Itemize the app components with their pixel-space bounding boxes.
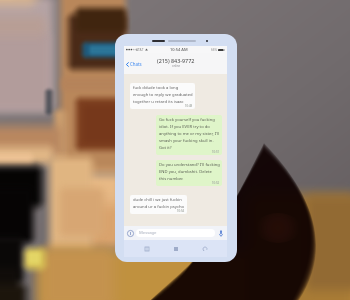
button[interactable]: fuck ddude took a long enough to reply w… <box>130 83 195 109</box>
button[interactable]: Back <box>198 242 211 255</box>
button[interactable]: Message <box>136 229 215 237</box>
button[interactable]: Recent apps <box>140 242 153 255</box>
staticText: 10:51 <box>212 150 220 154</box>
staticText: 10:54 <box>177 209 185 213</box>
button[interactable]: Home <box>169 242 182 255</box>
button[interactable]: Go fuck yourself you fucking idiot. If y… <box>156 115 222 155</box>
staticText: 66% <box>211 48 217 52</box>
staticText: 10:54 AM <box>170 47 188 52</box>
button[interactable]: Add attachment <box>126 229 135 238</box>
staticText: fuck ddude took a long enough to reply w… <box>133 85 193 104</box>
button[interactable]: Chats <box>126 61 142 67</box>
button[interactable]: Voice message <box>216 229 225 238</box>
staticText: online <box>172 64 181 68</box>
staticText: Do you understand? I'll fucking END you,… <box>159 162 220 181</box>
staticText: Go fuck yourself you fucking idiot. If y… <box>159 117 220 150</box>
button[interactable]: dude chill i wz just fuckin around ur a … <box>130 195 187 214</box>
staticText: 10:52 <box>212 181 220 185</box>
staticText: 10:48 <box>185 104 193 108</box>
button[interactable]: Chats <box>124 53 227 74</box>
staticText: dude chill i wz just fuckin around ur a … <box>133 197 185 209</box>
button[interactable]: Do you understand? I'll fucking END you,… <box>156 160 222 186</box>
staticText: AT&T <box>136 48 144 52</box>
staticText: (215) 843-9772 <box>157 57 195 64</box>
staticText: Chats <box>130 61 142 67</box>
staticText: Message <box>139 230 157 236</box>
